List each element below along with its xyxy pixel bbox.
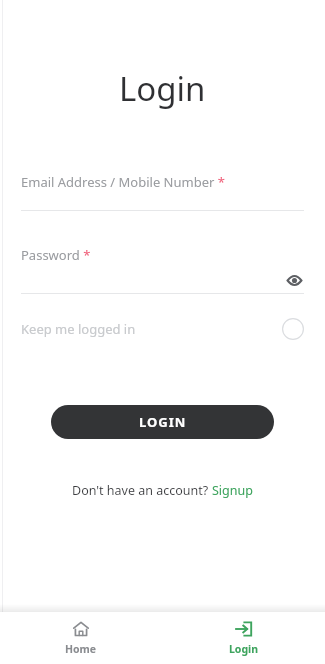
staticText: LOGIN [139,413,187,431]
button[interactable]: Email Address / Mobile Number * [21,173,304,211]
other: Login [235,620,253,638]
button[interactable]: Password * [21,246,304,294]
button[interactable]: Login [162,614,325,662]
staticText: Keep me logged in [21,320,136,338]
staticText: Login [119,66,206,111]
staticText: Login [229,642,259,656]
button[interactable]: Show password [284,270,304,290]
staticText: Don't have an account? [72,482,212,499]
button[interactable]: Don't have an account? [72,482,253,499]
button[interactable]: Home [0,614,162,662]
button[interactable]: LOGIN [51,405,274,439]
staticText: Email Address / Mobile Number * [21,173,225,191]
staticText: Signup [212,482,253,499]
button[interactable]: Keep me logged in [21,312,304,346]
staticText: Home [65,642,97,656]
staticText: Password * [21,246,91,264]
